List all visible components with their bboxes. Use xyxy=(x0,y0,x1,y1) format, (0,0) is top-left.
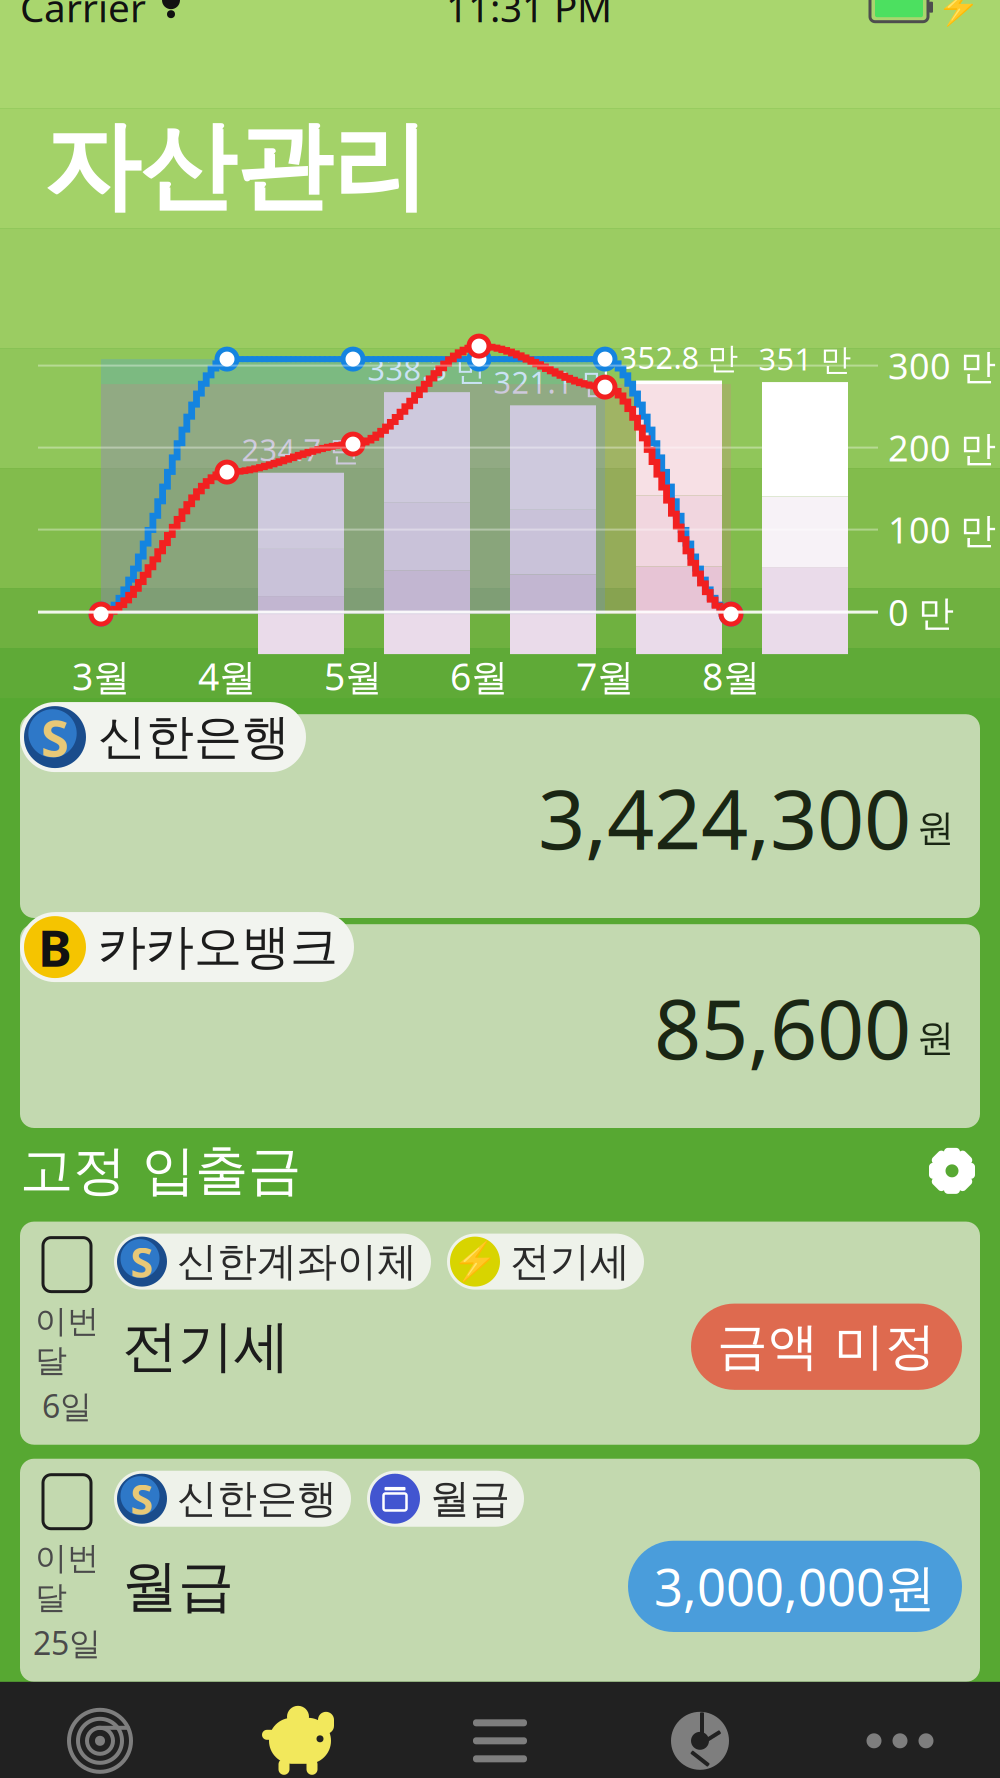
staticText: ⚡ xyxy=(937,0,980,27)
staticText: 4월 xyxy=(198,651,256,701)
button[interactable]: 이번달 xyxy=(20,1222,980,1445)
button[interactable]: 통계 xyxy=(600,1706,800,1776)
staticText: 85,600 xyxy=(654,972,911,1082)
staticText: 6월 xyxy=(450,651,508,701)
staticText: 월급 xyxy=(122,1552,234,1621)
staticText: Carrier xyxy=(20,0,146,33)
staticText: 8월 xyxy=(702,651,760,701)
staticText: 321.1 만 xyxy=(493,362,612,402)
staticText: 이번달 xyxy=(35,1539,99,1617)
staticText: 7월 xyxy=(576,651,634,701)
staticText: 월급 xyxy=(430,1474,510,1523)
staticText: 카카오뱅크 xyxy=(98,918,338,977)
staticText: 6일 xyxy=(42,1384,92,1427)
staticText: 5월 xyxy=(324,651,382,701)
button[interactable]: 더보기 xyxy=(800,1706,1000,1776)
staticText: ⚡ xyxy=(452,1240,498,1283)
staticText: S xyxy=(130,1471,153,1526)
staticText: 전기세 xyxy=(122,1312,290,1381)
staticText: 200 만 xyxy=(888,424,996,471)
staticText: 338.3 만 xyxy=(367,348,486,389)
staticText: 3,000,000원 xyxy=(654,1553,936,1620)
staticText: 300 만 xyxy=(888,342,996,389)
staticText: 234.7 만 xyxy=(241,429,360,470)
button[interactable]: 85,600 xyxy=(20,912,980,1112)
staticText: 351 만 xyxy=(758,338,851,379)
staticText: 352.8 만 xyxy=(619,337,738,377)
staticText: 3,424,300 xyxy=(538,762,911,872)
staticText: 100 만 xyxy=(888,506,996,553)
button[interactable]: 설정 xyxy=(924,1143,980,1199)
button[interactable]: 목록 xyxy=(400,1706,600,1776)
staticText: 신한은행 xyxy=(177,1474,337,1523)
staticText: 이번달 xyxy=(35,1302,99,1380)
staticText: 11:31 PM xyxy=(446,0,612,33)
staticText: S xyxy=(130,1234,153,1289)
staticText: 금액 미정 xyxy=(717,1316,936,1378)
staticText: S xyxy=(41,703,69,771)
staticText: 원 xyxy=(917,1015,954,1061)
button[interactable]: 이번달 xyxy=(20,1459,980,1682)
staticText: 3월 xyxy=(72,651,130,701)
staticText: 고정 입출금 xyxy=(20,1138,301,1204)
button[interactable]: 자산관리 xyxy=(200,1704,400,1778)
staticText: 전기세 xyxy=(510,1237,630,1286)
staticText: 0 만 xyxy=(888,588,954,636)
staticText: 자산관리 xyxy=(44,108,428,226)
staticText: B xyxy=(38,913,72,981)
button[interactable]: 목표 xyxy=(0,1706,200,1776)
staticText: 원 xyxy=(917,805,954,851)
staticText: 신한은행 xyxy=(98,708,290,767)
button[interactable]: 3,424,300 xyxy=(20,702,980,902)
staticText: 25일 xyxy=(33,1621,101,1664)
staticText: 신한계좌이체 xyxy=(177,1237,417,1286)
